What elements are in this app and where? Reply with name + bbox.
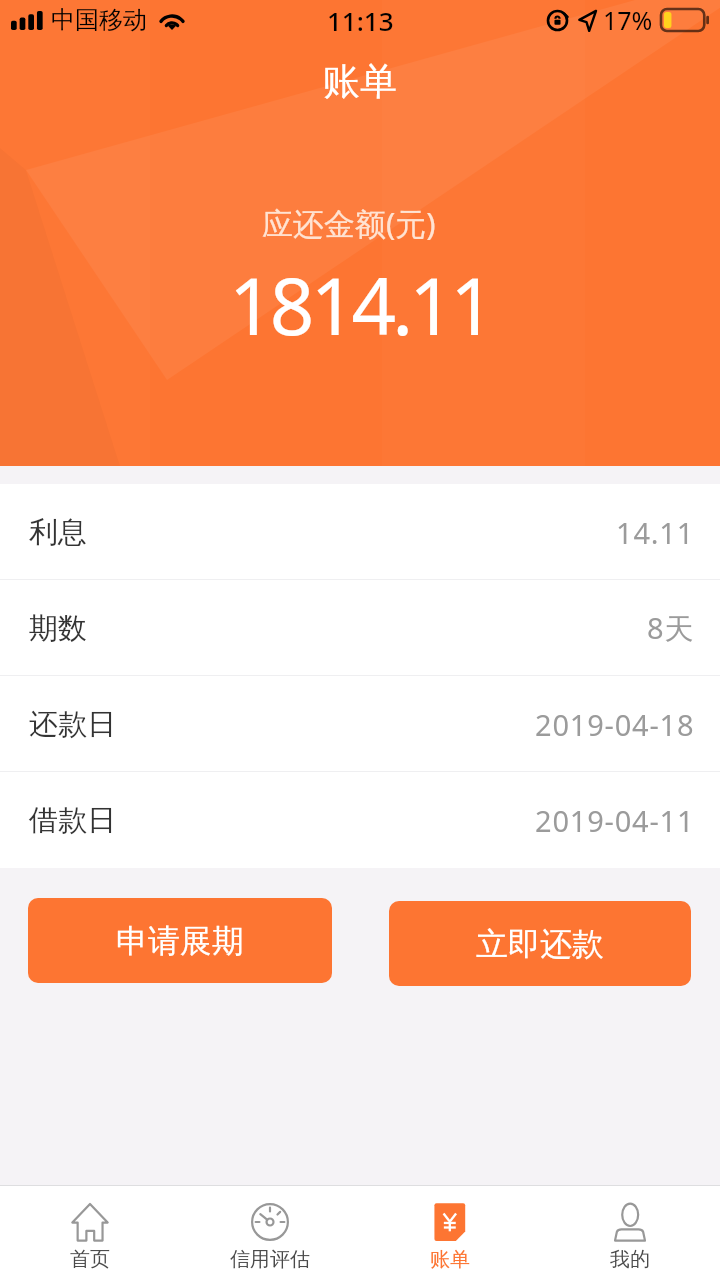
button[interactable]: 期数: [0, 580, 720, 676]
staticText: 8天: [647, 608, 695, 648]
staticText: 17%: [603, 3, 653, 37]
staticText: 信用评估: [230, 1247, 310, 1272]
staticText: 应还金额(元): [262, 202, 436, 244]
button[interactable]: 利息: [0, 484, 720, 580]
staticText: 申请展期: [116, 921, 244, 961]
button[interactable]: 借款日: [0, 772, 720, 868]
staticText: 首页: [70, 1247, 110, 1272]
staticText: 我的: [610, 1247, 650, 1272]
button[interactable]: 申请展期: [28, 898, 332, 983]
staticText: 14.11: [616, 513, 695, 552]
button[interactable]: Credit rating: [180, 1186, 360, 1280]
staticText: 还款日: [29, 706, 116, 743]
staticText: 1814.11: [229, 252, 492, 358]
staticText: 2019-04-18: [535, 705, 695, 744]
button[interactable]: Home: [0, 1186, 180, 1280]
staticText: 立即还款: [476, 924, 604, 964]
button[interactable]: Bill: [360, 1186, 540, 1280]
staticText: 2019-04-11: [535, 801, 695, 840]
staticText: 中国移动: [51, 5, 147, 35]
staticText: 账单: [430, 1247, 470, 1272]
staticText: 账单: [323, 58, 397, 105]
staticText: 借款日: [29, 802, 116, 839]
button[interactable]: 还款日: [0, 676, 720, 772]
staticText: 11:13: [327, 3, 394, 38]
staticText: 利息: [29, 514, 87, 551]
button[interactable]: 立即还款: [389, 901, 691, 986]
button[interactable]: Profile: [540, 1186, 720, 1280]
staticText: 期数: [29, 610, 87, 647]
